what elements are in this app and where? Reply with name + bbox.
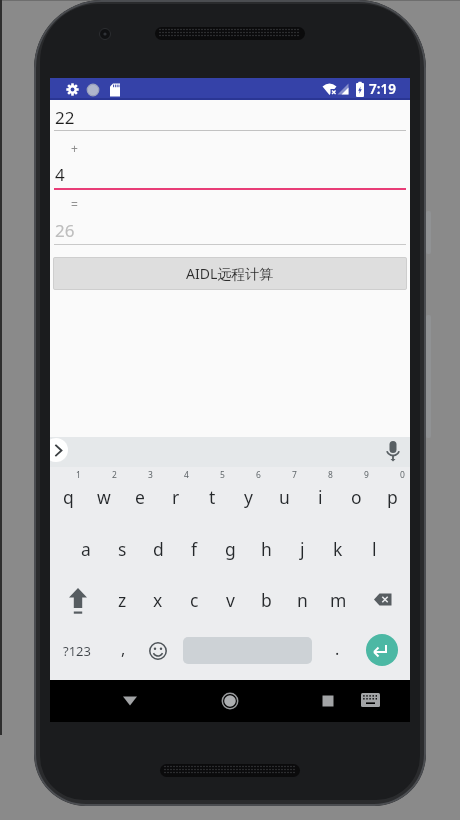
staticText: = — [71, 196, 78, 212]
button[interactable] — [312, 685, 344, 717]
button[interactable] — [266, 471, 302, 522]
button[interactable] — [158, 471, 194, 522]
button[interactable] — [50, 438, 68, 462]
button[interactable] — [140, 522, 176, 573]
staticText: c — [190, 588, 199, 612]
button[interactable] — [122, 471, 158, 522]
staticText: e — [135, 485, 145, 509]
button[interactable] — [248, 573, 284, 624]
staticText: z — [118, 588, 127, 612]
staticText: h — [261, 537, 272, 561]
staticText: 4 — [184, 469, 189, 481]
button[interactable] — [68, 522, 104, 573]
staticText: x — [153, 588, 163, 612]
button[interactable] — [147, 640, 169, 662]
staticText: 2 — [112, 469, 117, 481]
button[interactable]: , — [111, 634, 135, 664]
button[interactable] — [248, 522, 284, 573]
button[interactable] — [366, 634, 398, 666]
button[interactable]: AIDL远程计算 — [53, 257, 407, 290]
staticText: 1 — [76, 469, 81, 481]
staticText: n — [297, 588, 308, 612]
staticText: s — [118, 537, 127, 561]
staticText: AIDL远程计算 — [186, 264, 274, 283]
button[interactable] — [176, 573, 212, 624]
button[interactable] — [63, 80, 83, 100]
button[interactable] — [338, 471, 374, 522]
button[interactable]: . — [325, 634, 349, 664]
button[interactable] — [86, 471, 122, 522]
staticText: 7:19 — [369, 80, 396, 98]
button[interactable] — [194, 471, 230, 522]
staticText: . — [335, 638, 340, 660]
staticText: j — [300, 537, 305, 561]
button[interactable] — [54, 216, 406, 244]
staticText: + — [71, 140, 78, 156]
button[interactable] — [176, 522, 212, 573]
staticText: t — [209, 485, 216, 509]
staticText: u — [279, 485, 290, 509]
staticText: 6 — [256, 469, 261, 481]
staticText: f — [191, 537, 198, 561]
button[interactable] — [54, 103, 406, 131]
button[interactable] — [230, 471, 266, 522]
staticText: r — [172, 485, 180, 509]
button[interactable] — [212, 573, 248, 624]
staticText: p — [387, 485, 398, 509]
staticText: y — [244, 485, 253, 509]
button[interactable] — [60, 586, 96, 614]
staticText: 8 — [328, 469, 333, 481]
staticText: a — [81, 537, 91, 561]
staticText: 3 — [148, 469, 153, 481]
button[interactable]: ?123 — [55, 636, 99, 666]
staticText: q — [63, 485, 74, 509]
button[interactable] — [284, 522, 320, 573]
staticText: 9 — [364, 469, 369, 481]
staticText: w — [97, 485, 111, 509]
staticText: v — [226, 588, 235, 612]
button[interactable] — [104, 573, 140, 624]
button[interactable] — [302, 471, 338, 522]
staticText: 0 — [400, 469, 405, 481]
staticText: m — [330, 588, 347, 612]
button[interactable] — [383, 439, 403, 463]
button[interactable] — [374, 471, 410, 522]
staticText: l — [372, 537, 377, 561]
staticText: 22 — [55, 106, 75, 129]
staticText: d — [153, 537, 164, 561]
staticText: 5 — [220, 469, 225, 481]
button[interactable] — [365, 588, 401, 612]
staticText: 26 — [55, 219, 75, 242]
button[interactable] — [104, 522, 140, 573]
button[interactable] — [54, 160, 406, 188]
staticText: o — [351, 485, 362, 509]
button[interactable] — [214, 685, 246, 717]
staticText: ?123 — [63, 642, 91, 660]
staticText: k — [333, 537, 343, 561]
staticText: 7 — [292, 469, 297, 481]
staticText: , — [121, 638, 126, 660]
button[interactable] — [320, 573, 356, 624]
staticText: i — [318, 485, 323, 509]
button[interactable] — [212, 522, 248, 573]
button[interactable] — [356, 522, 392, 573]
staticText: 4 — [55, 163, 65, 186]
button[interactable] — [320, 522, 356, 573]
button[interactable] — [140, 573, 176, 624]
staticText: b — [261, 588, 272, 612]
button[interactable] — [284, 573, 320, 624]
button[interactable] — [50, 471, 86, 522]
staticText: g — [225, 537, 236, 561]
button[interactable] — [359, 689, 383, 713]
button[interactable] — [114, 685, 146, 717]
